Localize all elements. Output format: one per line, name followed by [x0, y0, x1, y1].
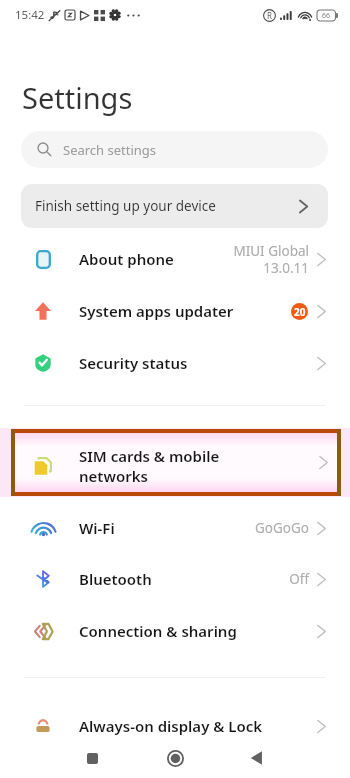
button[interactable]: Home: [153, 739, 197, 777]
staticText: 15:42: [15, 7, 45, 23]
staticText: GoGoGo: [255, 519, 309, 537]
button[interactable]: Always-on display & Lock: [0, 702, 350, 750]
staticText: 66: [322, 11, 331, 21]
staticText: System apps updater: [79, 301, 234, 321]
button[interactable]: Connection & sharing: [0, 607, 350, 655]
button[interactable]: Finish setting up your device: [21, 184, 328, 228]
button[interactable]: Back: [234, 739, 278, 777]
staticText: About phone: [79, 249, 174, 269]
staticText: Always-on display & Lock: [79, 716, 263, 736]
button[interactable]: Recents: [70, 739, 114, 777]
staticText: Bluetooth: [79, 569, 152, 589]
button[interactable]: Wi-Fi: [0, 504, 350, 552]
button[interactable]: SIM cards & mobile networks: [11, 429, 341, 496]
staticText: Off: [289, 570, 309, 588]
staticText: R: [267, 10, 272, 21]
button[interactable]: Search settings: [21, 131, 328, 168]
staticText: SIM cards & mobile networks: [79, 446, 220, 486]
staticText: MIUI Global 13.0.11: [233, 242, 309, 277]
staticText: Settings: [22, 78, 133, 117]
button[interactable]: System apps updater: [0, 287, 350, 335]
button[interactable]: Security status: [0, 339, 350, 387]
button[interactable]: About phone: [0, 235, 350, 283]
staticText: Wi-Fi: [79, 518, 115, 538]
staticText: Security status: [79, 353, 188, 373]
staticText: Finish setting up your device: [35, 197, 216, 215]
staticText: Search settings: [63, 141, 157, 159]
staticText: 20: [294, 305, 306, 319]
staticText: Connection & sharing: [79, 621, 237, 641]
button[interactable]: Bluetooth: [0, 555, 350, 603]
